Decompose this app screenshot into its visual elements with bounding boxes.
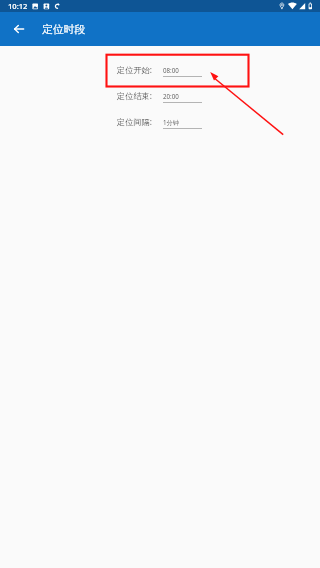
button[interactable]: Back [3, 13, 35, 45]
staticText: 定位开始: [117, 64, 152, 75]
staticText: 定位时段 [42, 23, 86, 37]
staticText: 20:00 [163, 92, 179, 100]
staticText: 10:12 [8, 1, 28, 11]
button[interactable]: 定位结束: [105, 84, 250, 108]
staticText: 08:00 [163, 66, 179, 74]
button[interactable]: 定位间隔: [105, 110, 250, 134]
staticText: 定位间隔: [117, 116, 152, 127]
staticText: 1分钟 [163, 118, 179, 126]
button[interactable]: 定位开始: [105, 58, 250, 82]
staticText: 定位结束: [117, 90, 152, 101]
